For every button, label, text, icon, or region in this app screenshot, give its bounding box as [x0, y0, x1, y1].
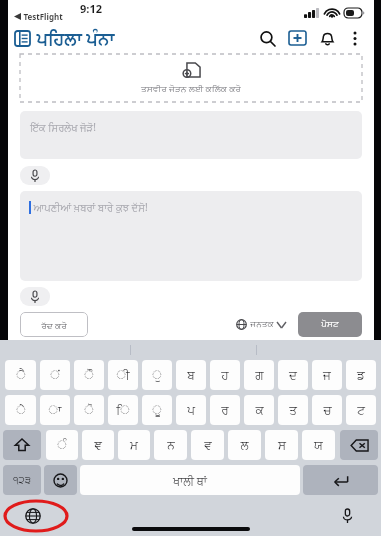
staticText: ਂ: [50, 369, 60, 381]
button[interactable]: Backspace: [340, 430, 378, 460]
staticText: TestFlight: [23, 11, 63, 22]
staticText: ਸ: [278, 439, 286, 451]
staticText: ਾ: [48, 404, 62, 416]
button[interactable]: ੧੨੩: [3, 465, 41, 495]
staticText: ਕ: [255, 404, 264, 416]
button[interactable]: ਞ: [82, 430, 114, 460]
staticText: ਇੱਕ ਸਿਰਲੇਖ ਜੋੜੋ!: [30, 120, 96, 134]
staticText: ੇ: [16, 404, 26, 416]
staticText: ੧੨੩: [13, 475, 31, 485]
button[interactable]: ਨ: [154, 430, 187, 460]
staticText: ਰ: [221, 404, 229, 416]
staticText: ਰੱਦ ਕਰੋ: [41, 319, 67, 331]
button[interactable]: Add image: [20, 54, 362, 102]
button[interactable]: ਪੋਸਟ: [298, 312, 362, 337]
staticText: ੈ: [16, 369, 26, 381]
button[interactable]: Shift: [3, 430, 41, 460]
button[interactable]: ੀ: [108, 360, 138, 390]
staticText: ਡ: [357, 369, 365, 381]
staticText: ਨ: [167, 439, 175, 451]
button[interactable]: ਲ: [228, 430, 261, 460]
staticText: 9:12: [80, 1, 102, 16]
button[interactable]: ੌ: [74, 360, 104, 390]
button[interactable]: ਾ: [40, 395, 70, 425]
button[interactable]: ਤ: [278, 395, 308, 425]
button[interactable]: ਰੱਦ ਕਰੋ: [20, 312, 88, 337]
button[interactable]: ਆਪਣੀਆਂ ਖ਼ਬਰਾਂ ਬਾਰੇ ਕੁਝ ਦੱਸੋ!: [20, 191, 362, 281]
button[interactable]: Voice input: [20, 287, 50, 306]
button[interactable]: Dictation: [335, 504, 359, 528]
staticText: ਚ: [323, 404, 332, 416]
staticText: ਤ: [289, 404, 297, 416]
button[interactable]: ਮ: [118, 430, 150, 460]
button[interactable]: ਵ: [191, 430, 224, 460]
button[interactable]: New post: [282, 23, 312, 53]
staticText: ਿ: [116, 404, 130, 416]
button[interactable]: ਜਨਤਕ: [233, 316, 289, 333]
button[interactable]: Emoji: [44, 465, 77, 495]
button[interactable]: ੈ: [5, 360, 36, 390]
staticText: ੰ: [57, 439, 67, 451]
button[interactable]: ਚ: [312, 395, 342, 425]
button[interactable]: Voice input: [20, 166, 50, 185]
button[interactable]: ਟ: [346, 395, 376, 425]
staticText: ਖਾਲੀ ਥਾਂ: [173, 473, 207, 488]
staticText: ਯ: [314, 439, 323, 451]
staticText: ੌ: [84, 369, 94, 381]
button[interactable]: ਡ: [346, 360, 376, 390]
button[interactable]: Return: [303, 465, 378, 495]
staticText: ਗ: [255, 369, 264, 381]
button[interactable]: ਹ: [210, 360, 240, 390]
staticText: ਞ: [94, 439, 102, 451]
staticText: ੋ: [84, 404, 94, 416]
staticText: ਤਸਵੀਰ ਜੋੜਨ ਲਈ ਕਲਿੱਕ ਕਰੋ: [141, 82, 241, 94]
button[interactable]: ਦ: [278, 360, 308, 390]
staticText: ਪ: [187, 404, 195, 416]
button[interactable]: ਖਾਲੀ ਥਾਂ: [80, 465, 300, 495]
button[interactable]: ੂ: [142, 395, 172, 425]
button[interactable]: ਯ: [302, 430, 335, 460]
button[interactable]: ਪ: [176, 395, 206, 425]
button[interactable]: ਸ: [265, 430, 298, 460]
button[interactable]: ੰ: [46, 430, 78, 460]
button[interactable]: Change keyboard language: [20, 503, 46, 529]
button[interactable]: ਂ: [40, 360, 70, 390]
button[interactable]: ੁ: [142, 360, 172, 390]
button[interactable]: ਬ: [176, 360, 206, 390]
staticText: ਟ: [357, 404, 365, 416]
staticText: ਵ: [204, 439, 212, 451]
staticText: ੀ: [116, 369, 130, 381]
button[interactable]: ਕ: [244, 395, 274, 425]
button[interactable]: ਰ: [210, 395, 240, 425]
button[interactable]: ੇ: [5, 395, 36, 425]
staticText: ਪੋਸਟ: [321, 320, 339, 329]
button[interactable]: ਿ: [108, 395, 138, 425]
staticText: ਪਹਿਲਾ ਪੰਨਾ: [36, 27, 115, 50]
staticText: ਬ: [187, 369, 195, 381]
button[interactable]: ਇੱਕ ਸਿਰਲੇਖ ਜੋੜੋ!: [20, 111, 362, 159]
button[interactable]: Notifications: [312, 23, 342, 53]
staticText: ਆਪਣੀਆਂ ਖ਼ਬਰਾਂ ਬਾਰੇ ਕੁਝ ਦੱਸੋ!: [33, 200, 148, 214]
button[interactable]: ੋ: [74, 395, 104, 425]
staticText: ਦ: [289, 369, 297, 381]
button[interactable]: ਗ: [244, 360, 274, 390]
staticText: ਜਨਤਕ: [250, 320, 274, 329]
staticText: ੁ: [152, 369, 162, 381]
staticText: ਮ: [130, 439, 138, 451]
button[interactable]: ਜ: [312, 360, 342, 390]
staticText: ਲ: [240, 439, 249, 451]
button[interactable]: More options: [342, 25, 368, 51]
staticText: ਜ: [323, 369, 331, 381]
staticText: ੂ: [152, 404, 162, 416]
staticText: ਹ: [221, 369, 229, 381]
button[interactable]: Search: [252, 23, 282, 53]
